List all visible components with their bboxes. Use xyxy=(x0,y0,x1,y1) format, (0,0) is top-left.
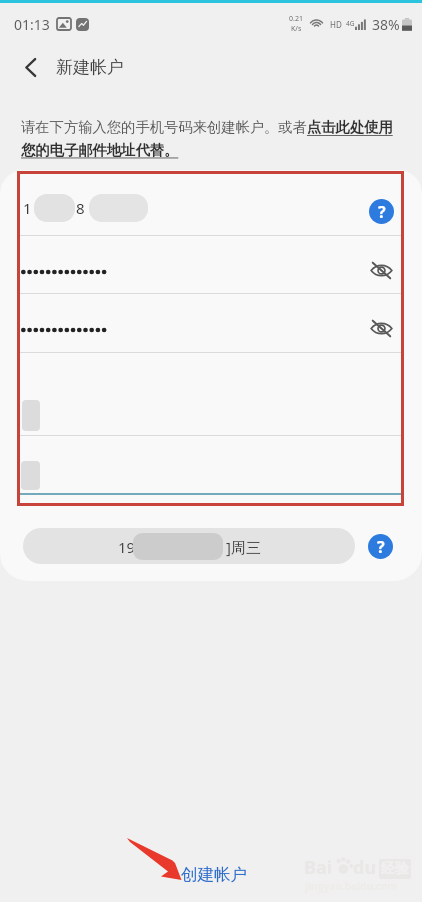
button[interactable]: Show password xyxy=(366,255,396,285)
button[interactable]: Help xyxy=(368,534,393,559)
staticText: ? xyxy=(378,201,386,223)
staticText: Bai xyxy=(304,855,333,880)
staticText: HD xyxy=(330,19,342,30)
staticText: 19 xyxy=(118,537,136,557)
button[interactable]: Show password xyxy=(366,313,396,343)
staticText: 1 xyxy=(23,198,32,218)
staticText: ? xyxy=(377,536,385,558)
staticText: 38% xyxy=(372,15,400,34)
staticText: 4G xyxy=(346,19,355,28)
button[interactable]: 19 xyxy=(23,528,355,564)
staticText: du xyxy=(353,855,377,880)
staticText: 创建帐户 xyxy=(181,864,247,885)
staticText: ]周三 xyxy=(226,537,261,557)
button[interactable]: Show password xyxy=(0,252,422,292)
staticText: 8 xyxy=(76,198,85,218)
button[interactable]: Back xyxy=(12,49,48,85)
staticText: 请在下方输入您的手机号码来创建帐户。或者点击此处使用您的电子邮件地址代替。 xyxy=(21,118,401,159)
staticText: 新建帐户 xyxy=(56,57,124,78)
button[interactable]: Show password xyxy=(0,310,422,350)
staticText: K/s xyxy=(291,24,302,34)
staticText: 0.21 xyxy=(289,14,303,24)
staticText: 经验 xyxy=(381,860,409,878)
button[interactable]: Help xyxy=(369,199,394,224)
button[interactable]: 1 xyxy=(0,194,422,234)
staticText: 01:13 xyxy=(14,15,50,34)
